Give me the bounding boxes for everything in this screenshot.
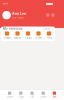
staticText: See all › — [43, 27, 53, 30]
button[interactable]: Home — [4, 90, 15, 100]
staticText: 9:41 — [3, 2, 8, 5]
staticText: Orders — [3, 37, 10, 40]
staticText: Ann Lee — [12, 11, 26, 16]
button[interactable]: See all › — [43, 27, 53, 30]
button[interactable]: Shop — [15, 90, 26, 100]
staticText: Cart — [29, 95, 34, 98]
button[interactable]: Offers — [33, 31, 44, 40]
staticText: Offers — [35, 37, 42, 40]
button[interactable]: Cart — [26, 90, 38, 100]
button[interactable]: Scan — [46, 13, 50, 17]
staticText: Help — [46, 37, 51, 40]
staticText: Deals — [40, 95, 46, 98]
button[interactable]: Settings — [51, 13, 55, 17]
staticText: Me — [53, 95, 56, 98]
staticText: Home — [7, 95, 13, 98]
button[interactable]: Points — [23, 31, 33, 40]
staticText: VIP Gold — [12, 16, 23, 19]
button[interactable]: Help — [44, 31, 54, 40]
staticText: Points — [24, 37, 31, 40]
button[interactable]: Wallet — [12, 31, 23, 40]
staticText: Shop — [18, 95, 23, 98]
button[interactable]: Me — [49, 90, 60, 100]
button[interactable]: Orders — [2, 31, 12, 40]
button[interactable]: Deals — [38, 90, 49, 100]
staticText: My services — [3, 27, 23, 30]
staticText: Wallet — [14, 37, 21, 40]
